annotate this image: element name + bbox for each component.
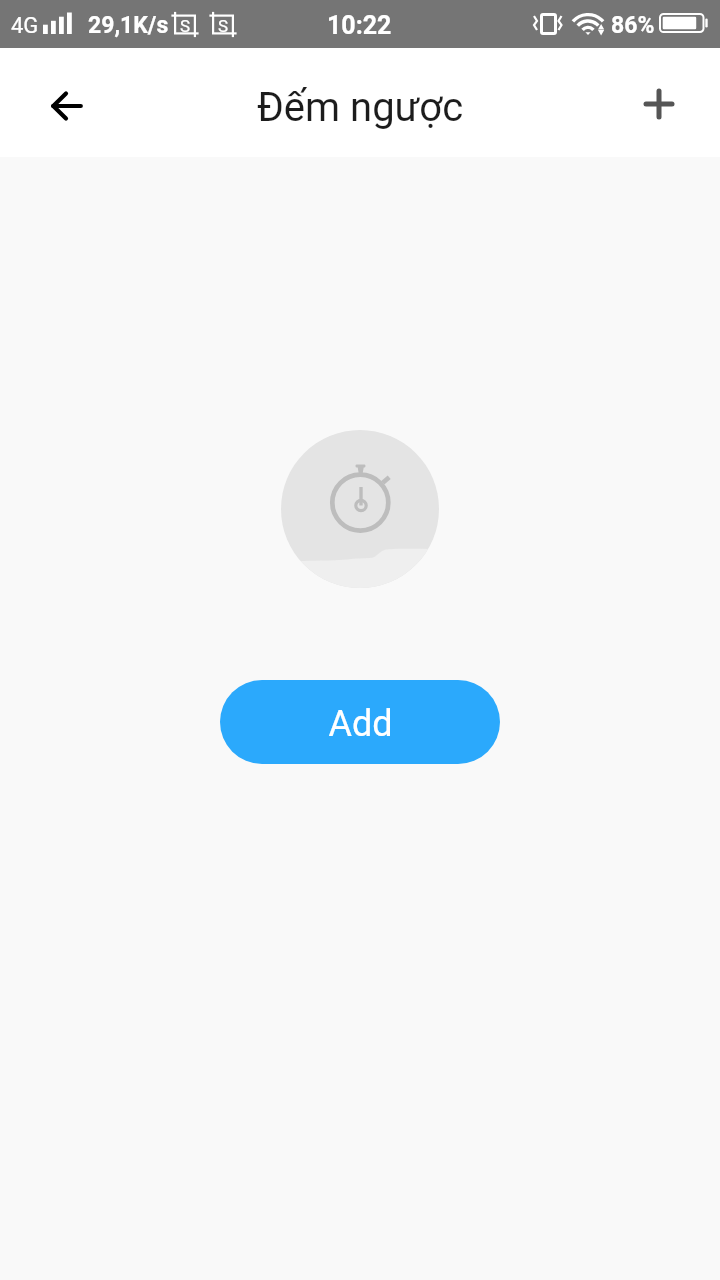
- staticText: 29,1K/s: [88, 12, 169, 39]
- button[interactable]: Add: [220, 680, 500, 764]
- staticText: Add: [328, 703, 393, 745]
- staticText: S: [218, 16, 229, 36]
- staticText: Đếm ngược: [257, 84, 464, 131]
- staticText: 86%: [611, 12, 655, 39]
- staticText: 4G: [11, 13, 39, 39]
- button[interactable]: Add countdown: [623, 68, 695, 140]
- staticText: 10:22: [327, 11, 392, 40]
- button[interactable]: Back: [31, 70, 103, 142]
- staticText: S: [180, 16, 191, 36]
